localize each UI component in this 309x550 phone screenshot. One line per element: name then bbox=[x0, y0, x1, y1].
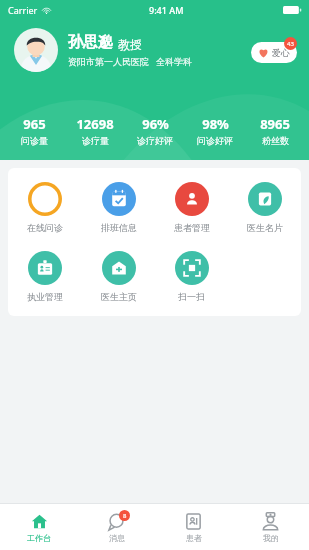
button[interactable]: 扫一扫 bbox=[155, 249, 228, 304]
button[interactable]: 医生主页 bbox=[82, 249, 155, 304]
button[interactable]: 医生名片 bbox=[228, 180, 301, 235]
button[interactable]: 8 bbox=[78, 504, 155, 550]
button[interactable]: 在线问诊 bbox=[8, 180, 82, 235]
button[interactable]: 98% bbox=[185, 115, 245, 146]
staticText: 我的 bbox=[263, 533, 279, 543]
staticText: Carrier bbox=[8, 4, 38, 16]
staticText: 教授 bbox=[118, 37, 142, 52]
button[interactable]: 12698 bbox=[65, 115, 125, 146]
staticText: 诊疗量 bbox=[82, 135, 109, 146]
staticText: 粉丝数 bbox=[262, 135, 289, 146]
button[interactable]: 排班信息 bbox=[82, 180, 155, 235]
staticText: 8965 bbox=[260, 115, 290, 133]
staticText: 爱心 bbox=[272, 47, 290, 58]
button[interactable]: Profile avatar bbox=[14, 28, 58, 72]
button[interactable]: 爱心 bbox=[251, 42, 297, 63]
button[interactable]: 8965 bbox=[245, 115, 305, 146]
button[interactable]: 96% bbox=[125, 115, 185, 146]
button[interactable]: 工作台 bbox=[0, 504, 78, 550]
staticText: 医生名片 bbox=[247, 222, 283, 233]
staticText: 在线问诊 bbox=[27, 222, 63, 233]
staticText: 执业管理 bbox=[27, 291, 63, 302]
button[interactable]: 执业管理 bbox=[8, 249, 82, 304]
staticText: 98% bbox=[202, 115, 229, 133]
staticText: 12698 bbox=[76, 115, 114, 133]
staticText: 9:41 AM bbox=[149, 4, 184, 16]
staticText: 资阳市第一人民医院 全科学科 bbox=[68, 55, 193, 67]
staticText: 96% bbox=[142, 115, 169, 133]
staticText: 患者 bbox=[186, 533, 202, 543]
staticText: 43 bbox=[287, 40, 294, 48]
staticText: 消息 bbox=[109, 533, 125, 543]
staticText: 医生主页 bbox=[101, 291, 137, 302]
button[interactable]: 患者管理 bbox=[155, 180, 228, 235]
staticText: 患者管理 bbox=[174, 222, 210, 233]
staticText: 965 bbox=[23, 115, 46, 133]
staticText: 问诊量 bbox=[21, 135, 48, 146]
staticText: 诊疗好评 bbox=[137, 135, 173, 146]
button[interactable]: 我的 bbox=[232, 504, 309, 550]
staticText: 排班信息 bbox=[101, 222, 137, 233]
button[interactable]: 患者 bbox=[155, 504, 232, 550]
staticText: 孙思邈 bbox=[68, 33, 113, 52]
button[interactable]: 965 bbox=[4, 115, 65, 146]
staticText: 问诊好评 bbox=[197, 135, 233, 146]
staticText: 扫一扫 bbox=[178, 291, 205, 302]
staticText: 工作台 bbox=[27, 533, 51, 543]
staticText: 8 bbox=[123, 512, 127, 520]
